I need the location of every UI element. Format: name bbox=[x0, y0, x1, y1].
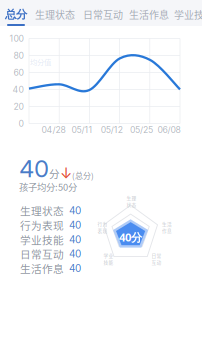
staticText: 生理状态 bbox=[35, 7, 75, 22]
staticText: 40 bbox=[69, 262, 81, 274]
button[interactable]: 学业技能 bbox=[174, 4, 202, 30]
staticText: 生活 作息 bbox=[162, 220, 172, 234]
button[interactable]: 总分 bbox=[2, 4, 30, 30]
staticText: 总分 bbox=[5, 7, 27, 22]
button[interactable]: 生活作息 bbox=[129, 4, 169, 30]
staticText: 生活作息 bbox=[20, 261, 64, 276]
staticText: 40 bbox=[12, 84, 23, 95]
staticText: 学业技能 bbox=[20, 232, 64, 247]
staticText: 100 bbox=[9, 33, 23, 44]
staticText: 学业技能 bbox=[174, 7, 202, 22]
staticText: 生理状态 bbox=[20, 203, 64, 218]
staticText: 40分 bbox=[119, 229, 142, 245]
staticText: 40 bbox=[69, 219, 81, 231]
staticText: 日常互动 bbox=[83, 7, 123, 22]
staticText: (总分) bbox=[72, 169, 94, 181]
staticText: 40 bbox=[19, 154, 49, 183]
staticText: 05/12 bbox=[101, 124, 123, 135]
button[interactable]: 生理状态 bbox=[35, 4, 75, 30]
staticText: 20 bbox=[13, 101, 23, 112]
staticText: 04/28 bbox=[41, 124, 65, 135]
staticText: 学业 技能 bbox=[103, 252, 113, 265]
staticText: 05/25 bbox=[130, 124, 153, 135]
button[interactable]: 日常互动 bbox=[83, 4, 123, 30]
staticText: 均分值 bbox=[30, 56, 51, 67]
staticText: 生活作息 bbox=[129, 7, 169, 22]
staticText: 05/11 bbox=[71, 124, 92, 135]
staticText: 孩子均分:50分 bbox=[19, 180, 77, 193]
staticText: 生理 状态 bbox=[126, 194, 136, 208]
staticText: 40 bbox=[69, 205, 81, 217]
staticText: 日常 互动 bbox=[151, 252, 161, 265]
staticText: 80 bbox=[13, 50, 23, 61]
staticText: 分 bbox=[49, 166, 60, 181]
staticText: 日常互动 bbox=[20, 246, 64, 262]
staticText: 40 bbox=[69, 233, 81, 246]
staticText: 06/08 bbox=[157, 124, 180, 135]
staticText: 60 bbox=[13, 67, 23, 78]
staticText: 0 bbox=[18, 118, 23, 129]
staticText: 40 bbox=[69, 248, 81, 260]
staticText: 行为表现 bbox=[20, 217, 64, 233]
staticText: 行为 表现 bbox=[97, 220, 107, 234]
staticText: ↓ bbox=[60, 164, 72, 182]
